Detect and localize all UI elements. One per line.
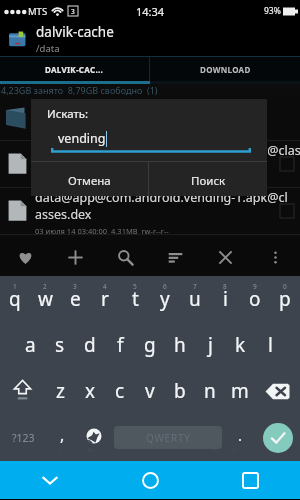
- button[interactable]: Поиск: [149, 162, 267, 196]
- button[interactable]: Home: [100, 461, 200, 499]
- staticText: i: [223, 286, 228, 312]
- button[interactable]: Backspace: [255, 368, 300, 414]
- button[interactable]: Enter: [255, 414, 300, 461]
- staticText: r: [101, 286, 109, 312]
- staticText: ,: [60, 424, 65, 446]
- button[interactable]: v: [135, 368, 165, 414]
- button[interactable]: c: [105, 368, 135, 414]
- button[interactable]: g: [135, 322, 165, 368]
- staticText: data@app@com.android.vending-1.apk@class: [35, 142, 300, 159]
- button[interactable]: h: [165, 322, 195, 368]
- button[interactable]: Shift: [0, 368, 45, 414]
- button[interactable]: 1: [0, 276, 30, 322]
- staticText: data@app@com.android.vending-1.apk@cl: [35, 189, 288, 206]
- button[interactable]: 6: [150, 276, 180, 322]
- staticText: x: [85, 378, 96, 404]
- button[interactable]: 3: [60, 276, 90, 322]
- staticText: QWERTY: [146, 431, 191, 445]
- button[interactable]: Favorite: [0, 239, 50, 276]
- staticText: ru: [213, 447, 219, 454]
- staticText: 6: [163, 282, 167, 291]
- button[interactable]: DALVIK-CAC...: [0, 57, 149, 81]
- staticText: 93%: [264, 5, 281, 17]
- button[interactable]: 0: [270, 276, 300, 322]
- button[interactable]: 9: [240, 276, 270, 322]
- button[interactable]: j: [195, 322, 225, 368]
- button[interactable]: More options: [250, 239, 300, 276]
- staticText: 7: [193, 282, 197, 291]
- button[interactable]: QWERTY: [114, 426, 222, 449]
- button[interactable]: n: [195, 368, 225, 414]
- staticText: 2: [43, 282, 47, 291]
- button[interactable]: 2: [30, 276, 60, 322]
- staticText: Отмена: [68, 173, 111, 189]
- button[interactable]: Recents: [200, 461, 300, 499]
- staticText: p: [279, 286, 291, 312]
- staticText: h: [174, 332, 186, 358]
- staticText: w: [38, 286, 53, 312]
- staticText: q: [9, 286, 21, 312]
- button[interactable]: Select: [0, 141, 300, 188]
- staticText: v: [145, 378, 155, 404]
- staticText: 4,23GB занято 8,79GB свободно (1): [1, 84, 158, 96]
- staticText: 03 июля 14 03:40 drwxr-xr-x: [35, 117, 137, 127]
- staticText: d: [84, 332, 96, 358]
- staticText: /data: [36, 42, 60, 55]
- staticText: g: [144, 332, 156, 358]
- button[interactable]: Sort: [150, 239, 200, 276]
- staticText: o: [249, 286, 261, 312]
- button[interactable]: DOWNLOAD: [150, 57, 300, 81]
- staticText: MTS: [28, 5, 48, 18]
- button[interactable]: Close: [200, 239, 250, 276]
- staticText: 0: [283, 282, 287, 291]
- staticText: u: [189, 286, 201, 312]
- button[interactable]: s: [45, 322, 75, 368]
- button[interactable]: Back: [0, 461, 100, 499]
- button[interactable]: 8: [210, 276, 240, 322]
- button[interactable]: z: [45, 368, 75, 414]
- button[interactable]: com.android.vending-1: [0, 96, 300, 141]
- button[interactable]: dalvik-cache: [0, 22, 300, 56]
- staticText: n: [204, 378, 216, 404]
- button[interactable]: ,: [48, 414, 77, 461]
- button[interactable]: 7: [180, 276, 210, 322]
- staticText: s: [55, 332, 65, 358]
- staticText: DOWNLOAD: [200, 64, 251, 75]
- button[interactable]: a: [15, 322, 45, 368]
- staticText: 3: [71, 7, 75, 16]
- staticText: f: [117, 332, 124, 358]
- staticText: m: [231, 378, 249, 404]
- button[interactable]: d: [75, 322, 105, 368]
- button[interactable]: Select: [280, 157, 294, 171]
- staticText: asses.dex: [35, 206, 92, 223]
- button[interactable]: Add: [50, 239, 100, 276]
- button[interactable]: Select: [0, 188, 300, 235]
- button[interactable]: k: [225, 322, 255, 368]
- staticText: Поиск: [191, 173, 226, 189]
- staticText: e: [70, 286, 81, 312]
- staticText: k: [235, 332, 246, 358]
- button[interactable]: ?123: [0, 414, 48, 461]
- staticText: 3: [73, 282, 77, 291]
- button[interactable]: x: [75, 368, 105, 414]
- staticText: com.android.vending-1: [35, 97, 172, 114]
- staticText: j: [208, 332, 213, 358]
- button[interactable]: b: [165, 368, 195, 414]
- staticText: l: [268, 332, 273, 358]
- staticText: 5: [133, 282, 137, 291]
- staticText: b: [174, 378, 186, 404]
- button[interactable]: Отмена: [31, 162, 148, 196]
- button[interactable]: 4: [90, 276, 120, 322]
- button[interactable]: 5: [120, 276, 150, 322]
- button[interactable]: Search: [100, 239, 150, 276]
- button[interactable]: f: [105, 322, 135, 368]
- button[interactable]: Select: [280, 204, 294, 218]
- button[interactable]: l: [255, 322, 285, 368]
- button[interactable]: m: [225, 368, 255, 414]
- button[interactable]: Change language: [77, 414, 111, 461]
- button[interactable]: .: [225, 414, 255, 461]
